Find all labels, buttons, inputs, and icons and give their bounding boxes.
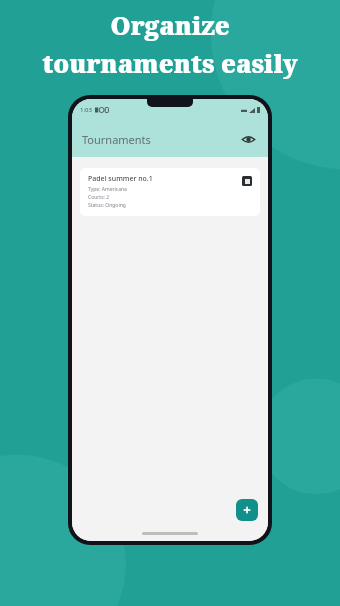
button[interactable]: Add tournament <box>236 499 258 521</box>
staticText: Type: Americana <box>88 186 127 193</box>
staticText: Status: Ongoing <box>88 202 126 209</box>
staticText: Organize <box>110 8 230 42</box>
staticText: 1:03 <box>80 106 92 114</box>
staticText: Courts: 2 <box>88 194 110 201</box>
other: Tournament image <box>242 176 252 186</box>
button[interactable]: Toggle visibility <box>238 129 258 149</box>
staticText: tournaments easily <box>42 46 298 80</box>
staticText: Tournaments <box>82 132 151 147</box>
button[interactable]: Padel summer no.1 <box>80 168 260 216</box>
staticText: Padel summer no.1 <box>88 174 153 184</box>
